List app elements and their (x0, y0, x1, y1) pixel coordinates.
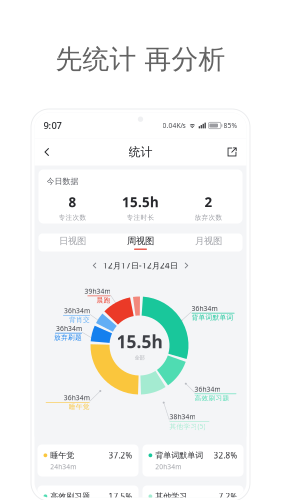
staticText: 37.2% (108, 450, 132, 461)
staticText: 今日数据 (46, 176, 78, 186)
staticText: 专注时长 (126, 213, 154, 222)
button[interactable]: 月视图 (174, 233, 242, 251)
staticText: 背单词默单词 (155, 450, 203, 460)
staticText: 39h34m (84, 287, 110, 296)
staticText: 2 (204, 193, 212, 211)
staticText: 其他学习(5) (169, 422, 205, 431)
staticText: 先统计 再分析 (55, 43, 225, 76)
staticText: 日视图 (59, 235, 86, 247)
staticText: 85% (223, 121, 237, 130)
staticText: 睡午觉 (69, 403, 90, 411)
staticText: 放弃刷题 (54, 333, 82, 342)
staticText: 晨跑 (96, 296, 110, 304)
staticText: 9:07 (43, 119, 61, 132)
staticText: 32.8% (213, 450, 237, 461)
staticText: 38h34m (169, 412, 195, 421)
staticText: 月视图 (195, 235, 222, 247)
button[interactable]: Next week (180, 257, 193, 273)
staticText: 背肖交 (69, 316, 90, 324)
button[interactable]: 背单词默单词 (142, 444, 243, 476)
staticText: 24h34m (50, 462, 76, 471)
staticText: 12月17日-12月24日 (103, 260, 178, 271)
staticText: 高效刷习题 (50, 491, 90, 500)
staticText: 统计 (128, 145, 152, 159)
staticText: 7.2% (218, 491, 237, 500)
button[interactable]: Previous week (88, 257, 101, 273)
button[interactable]: 日视图 (38, 233, 106, 251)
button[interactable]: Share (221, 141, 242, 162)
staticText: 8 (68, 193, 76, 211)
staticText: 其他学习 (155, 491, 187, 500)
staticText: 睡午觉 (50, 450, 74, 460)
button[interactable]: 其他学习 (142, 485, 243, 500)
staticText: 20h34m (155, 462, 181, 471)
staticText: 高效刷习题 (194, 394, 229, 402)
button[interactable]: 睡午觉 (37, 444, 138, 476)
button[interactable]: Back (38, 142, 55, 162)
staticText: 背单词默单词 (192, 313, 234, 322)
staticText: 0.04K/s (162, 121, 185, 130)
staticText: 周视图 (127, 235, 154, 247)
button[interactable]: 高效刷习题 (37, 485, 138, 500)
staticText: 15.5h (122, 193, 159, 211)
staticText: 17.5% (108, 491, 132, 500)
staticText: 放弃次数 (194, 213, 222, 222)
staticText: 36h34m (192, 304, 218, 313)
staticText: 36h34m (64, 393, 90, 402)
staticText: 专注次数 (58, 213, 86, 222)
staticText: 36h34m (194, 385, 220, 394)
staticText: 15.5h (116, 330, 162, 353)
staticText: 36h34m (64, 306, 90, 315)
staticText: 36h34m (56, 324, 82, 333)
button[interactable]: 周视图 (106, 233, 174, 251)
staticText: 全部 (134, 354, 144, 361)
